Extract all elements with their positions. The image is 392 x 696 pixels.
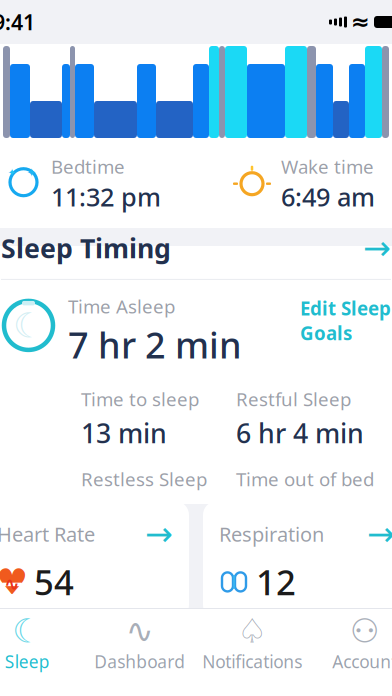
- staticText: Heart Rate: [0, 521, 95, 547]
- staticText: →: [363, 229, 391, 267]
- staticText: 6 hr 4 min: [236, 415, 364, 451]
- staticText: Account: [332, 650, 392, 673]
- staticText: Time out of bed: [236, 467, 374, 491]
- staticText: Time Asleep: [68, 294, 175, 319]
- staticText: 11:32 pm: [51, 180, 161, 213]
- staticText: ⚇: [350, 612, 380, 650]
- button[interactable]: Respiration: [203, 501, 392, 619]
- staticText: Notifications: [202, 650, 302, 673]
- staticText: Wake time: [281, 154, 374, 179]
- button[interactable]: ☾: [0, 607, 83, 673]
- staticText: →: [145, 515, 173, 553]
- staticText: ✦: [26, 166, 36, 179]
- staticText: Restless Sleep: [81, 467, 207, 491]
- staticText: ∿: [4, 573, 20, 594]
- button[interactable]: ♤: [196, 607, 308, 673]
- staticText: 6:49 am: [281, 180, 375, 213]
- staticText: Sleep Timing: [1, 230, 171, 266]
- staticText: 13 min: [81, 415, 167, 451]
- staticText: Bedtime: [51, 154, 125, 179]
- staticText: Sleep: [5, 650, 50, 673]
- staticText: ♥: [0, 561, 28, 602]
- staticText: 12: [256, 559, 296, 605]
- staticText: ∿: [126, 612, 154, 650]
- staticText: ☾: [12, 612, 42, 650]
- staticText: ☾: [13, 306, 44, 345]
- button[interactable]: Heart Rate: [0, 501, 189, 619]
- button[interactable]: ⚇: [308, 607, 392, 673]
- staticText: Edit Sleep Goals: [300, 296, 391, 345]
- staticText: 4 min: [236, 495, 307, 531]
- staticText: ✦: [7, 166, 16, 179]
- staticText: Dashboard: [94, 650, 185, 673]
- staticText: 7 hr 2 min: [68, 321, 242, 368]
- staticText: 54: [34, 559, 74, 605]
- button[interactable]: Edit Sleep Goals: [300, 294, 391, 345]
- staticText: Time to sleep: [81, 386, 199, 411]
- staticText: Respiration: [219, 521, 324, 547]
- button[interactable]: ∿: [83, 607, 196, 673]
- staticText: 9:41: [0, 8, 35, 36]
- button[interactable]: Sleep Timing: [0, 211, 392, 279]
- staticText: Restful Sleep: [236, 386, 351, 411]
- staticText: ♤: [237, 612, 267, 650]
- staticText: →: [367, 515, 392, 553]
- staticText: ≈: [351, 9, 370, 35]
- staticText: 58 min: [81, 495, 167, 531]
